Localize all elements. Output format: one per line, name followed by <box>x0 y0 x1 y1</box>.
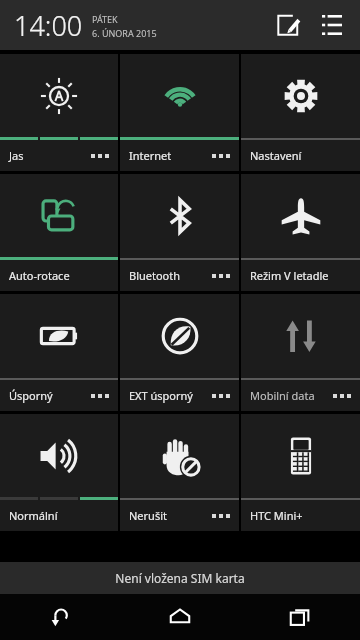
button[interactable]: HTC Mini+ <box>241 414 360 531</box>
staticText: Normální <box>9 508 58 523</box>
staticText: Auto-rotace <box>9 268 70 283</box>
button[interactable]: Recents <box>240 594 360 640</box>
staticText: Režim V letadle <box>250 268 329 283</box>
button[interactable]: List <box>310 3 354 47</box>
staticText: Mobilní data <box>250 388 315 403</box>
staticText: PÁTEK <box>92 13 118 25</box>
button[interactable]: Normální <box>0 414 118 531</box>
button[interactable]: Edit <box>266 3 310 47</box>
button[interactable]: Auto-rotace <box>0 174 118 291</box>
button[interactable]: Mobilní data <box>241 294 360 411</box>
staticText: Není vložena SIM karta <box>115 570 245 586</box>
button[interactable]: Nastavení <box>241 54 360 171</box>
button[interactable]: Jas <box>0 54 118 171</box>
button[interactable]: Nerušit <box>120 414 239 531</box>
staticText: Nastavení <box>250 148 302 163</box>
staticText: Internet <box>129 148 172 163</box>
button[interactable]: EXT úsporný <box>120 294 239 411</box>
staticText: Jas <box>9 148 24 163</box>
staticText: Úsporný <box>9 388 53 403</box>
staticText: Nerušit <box>129 508 167 523</box>
button[interactable]: Bluetooth <box>120 174 239 291</box>
button[interactable]: Home <box>120 594 240 640</box>
staticText: Bluetooth <box>129 268 181 283</box>
button[interactable]: Úsporný <box>0 294 118 411</box>
staticText: 6. ÚNORA 2015 <box>92 27 157 39</box>
staticText: 14:00 <box>14 7 83 44</box>
button[interactable]: Back <box>0 594 120 640</box>
button[interactable]: Režim V letadle <box>241 174 360 291</box>
button[interactable]: Internet <box>120 54 239 171</box>
staticText: EXT úsporný <box>129 388 193 403</box>
staticText: HTC Mini+ <box>250 508 303 523</box>
